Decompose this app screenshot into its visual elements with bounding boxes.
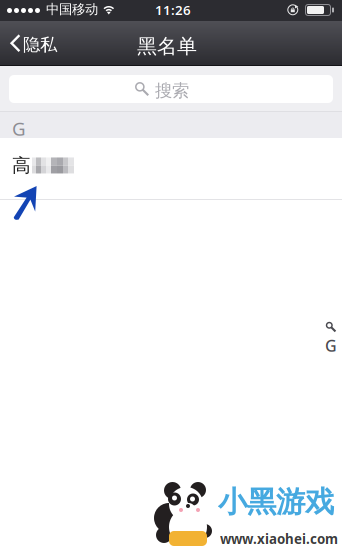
button[interactable]: 隐私	[0, 21, 68, 66]
staticText: G	[325, 335, 337, 356]
staticText: 搜索	[155, 80, 189, 101]
staticText: 黑名单	[137, 34, 197, 59]
staticText: 隐私	[23, 34, 57, 55]
button[interactable]: 搜索	[9, 75, 333, 103]
button[interactable]: 高	[0, 138, 342, 200]
button[interactable]: Section index	[324, 321, 340, 353]
staticText: G	[12, 116, 26, 141]
staticText: 中国移动	[46, 1, 98, 17]
staticText: 高	[12, 154, 31, 177]
staticText: www.xiaohei.com	[220, 530, 338, 548]
staticText: 11:26	[155, 1, 191, 19]
staticText: 小黑游戏	[218, 484, 334, 520]
